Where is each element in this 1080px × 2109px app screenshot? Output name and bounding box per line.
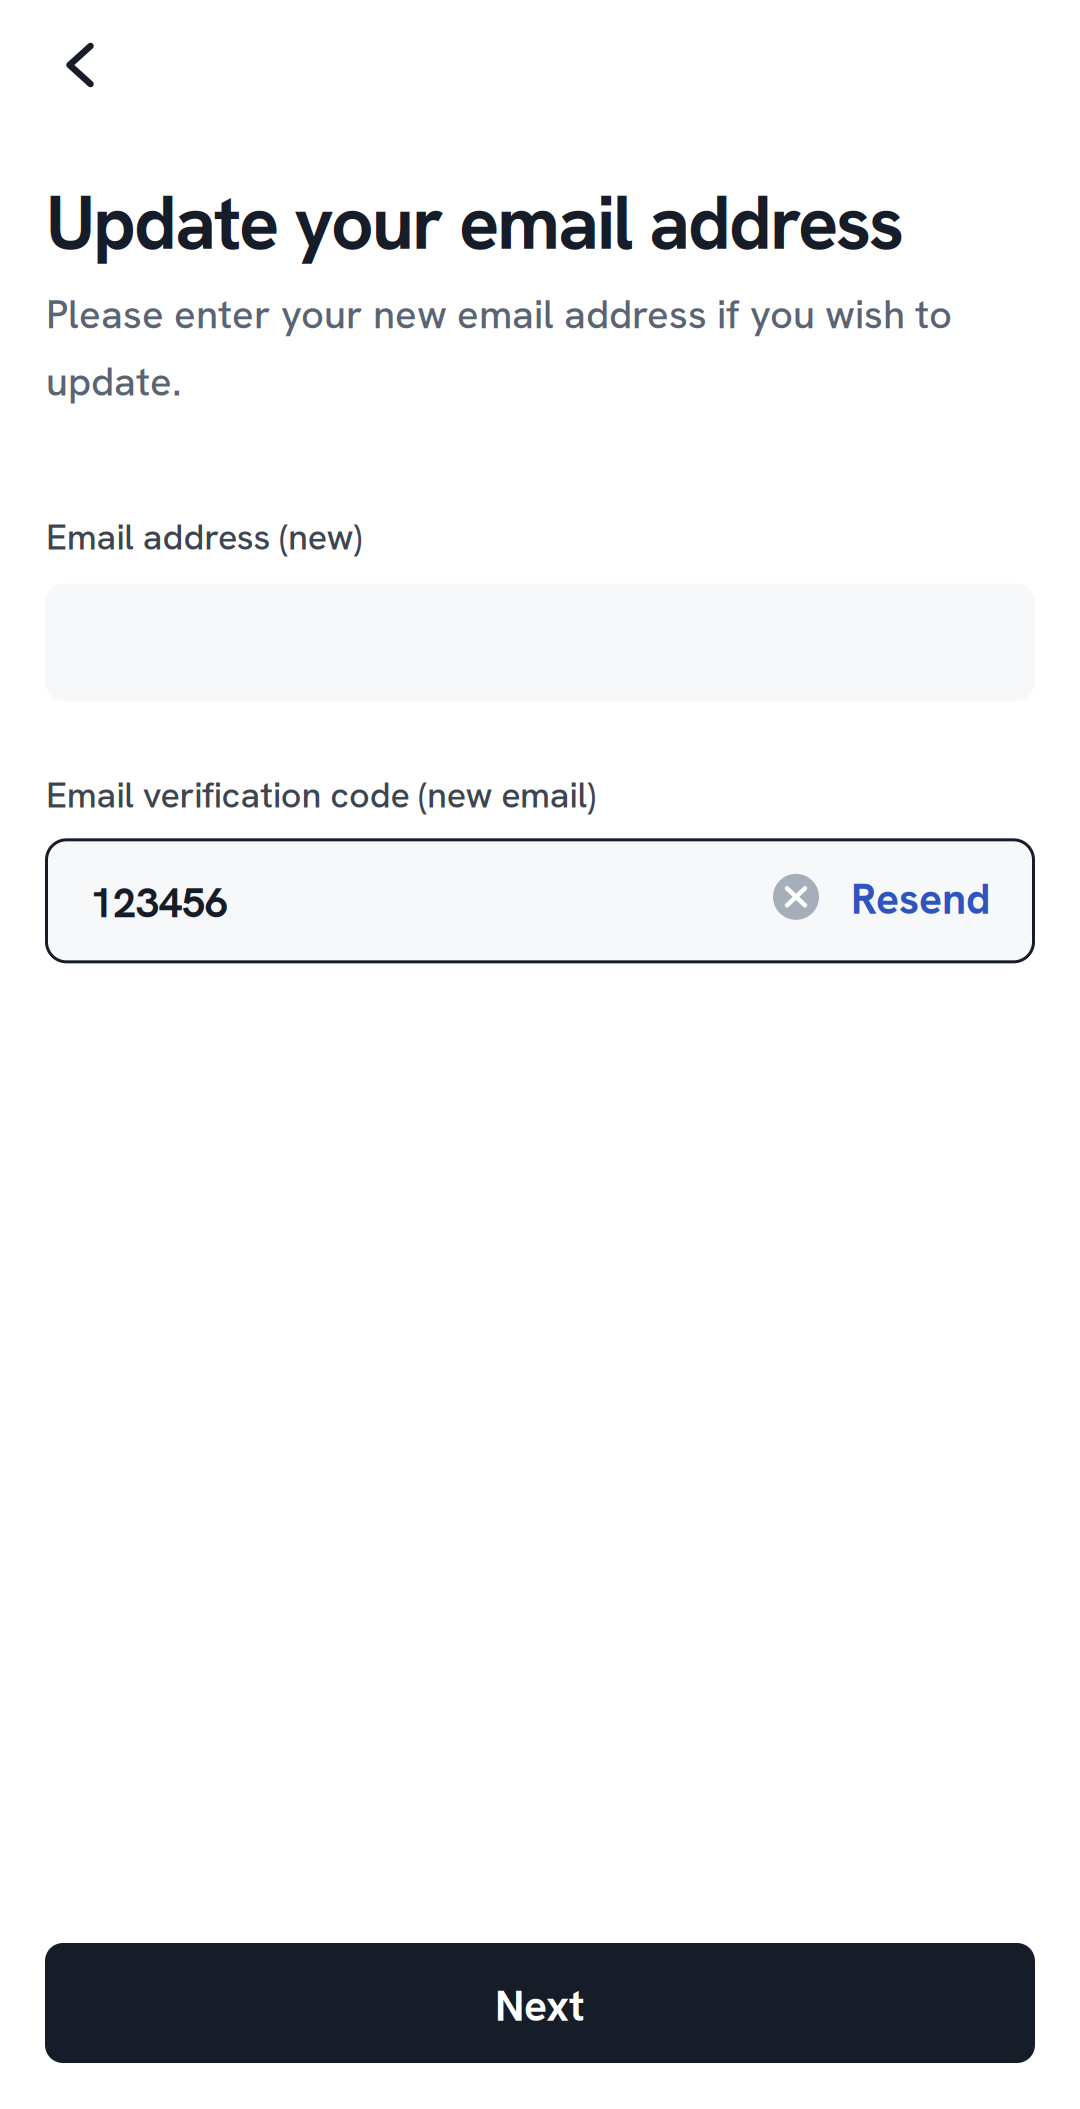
staticText: Next bbox=[495, 1978, 585, 2034]
staticText: Update your email address bbox=[46, 174, 904, 271]
button[interactable]: Back bbox=[0, 0, 130, 105]
staticText: Email address (new) bbox=[46, 513, 362, 560]
staticText: Email verification code (new email) bbox=[46, 771, 596, 818]
button[interactable]: Resend bbox=[831, 861, 992, 941]
button[interactable]: Next bbox=[45, 1943, 1035, 2063]
staticText: Resend bbox=[851, 871, 990, 927]
button[interactable]: Clear bbox=[761, 866, 831, 936]
staticText: 123456 bbox=[90, 876, 228, 930]
staticText: Please enter your new email address if y… bbox=[46, 288, 952, 407]
